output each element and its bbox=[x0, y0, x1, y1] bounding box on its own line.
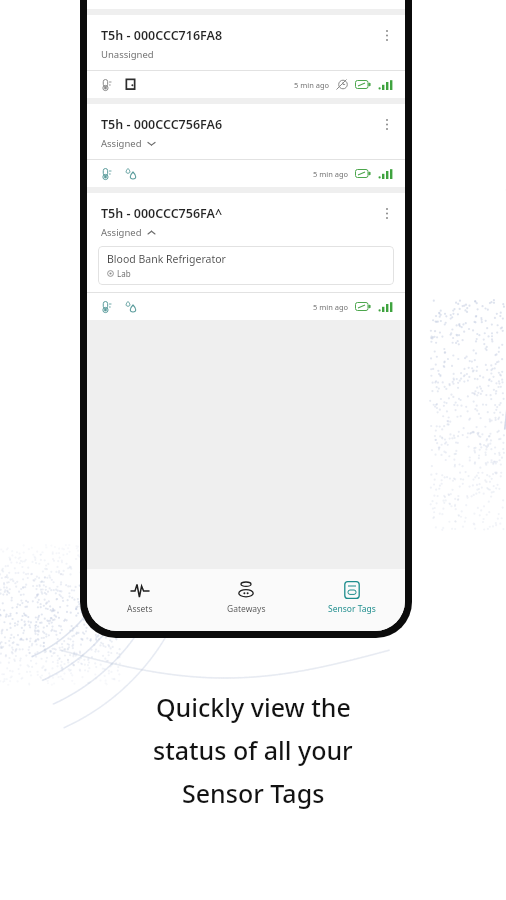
button[interactable]: Sensor Tags bbox=[309, 577, 395, 618]
staticText: Lab bbox=[117, 268, 131, 279]
button[interactable]: Blood Bank Refrigerator bbox=[98, 246, 394, 285]
staticText: Assets bbox=[127, 603, 153, 615]
button[interactable]: Assets bbox=[97, 577, 183, 618]
button[interactable]: More options bbox=[377, 114, 397, 134]
staticText: 5 min ago bbox=[294, 80, 330, 90]
button[interactable]: T5h - 000CCC756FA^ bbox=[87, 193, 405, 320]
staticText: Blood Bank Refrigerator bbox=[107, 252, 226, 266]
staticText: status of all your bbox=[153, 733, 353, 767]
staticText: Unassigned bbox=[101, 48, 154, 61]
staticText: 5 min ago bbox=[313, 169, 349, 179]
button[interactable]: Gateways bbox=[203, 577, 289, 618]
staticText: T5h - 000CCC756FA6 bbox=[101, 116, 223, 133]
staticText: T5h - 000CCC756FA^ bbox=[101, 205, 223, 222]
staticText: Assigned bbox=[101, 137, 142, 150]
button[interactable]: T5h - 000CCC716FA8 bbox=[87, 15, 405, 98]
button[interactable]: More options bbox=[377, 25, 397, 45]
staticText: Assigned bbox=[101, 226, 142, 239]
staticText: Quickly view the bbox=[156, 690, 351, 724]
button[interactable]: More options bbox=[377, 203, 397, 223]
staticText: Gateways bbox=[227, 603, 266, 615]
staticText: 5 min ago bbox=[313, 302, 349, 312]
staticText: T5h - 000CCC716FA8 bbox=[101, 27, 223, 44]
staticText: Sensor Tags bbox=[328, 603, 376, 615]
button[interactable]: T5h - 000CCC756FA6 bbox=[87, 104, 405, 187]
staticText: Sensor Tags bbox=[182, 776, 325, 810]
